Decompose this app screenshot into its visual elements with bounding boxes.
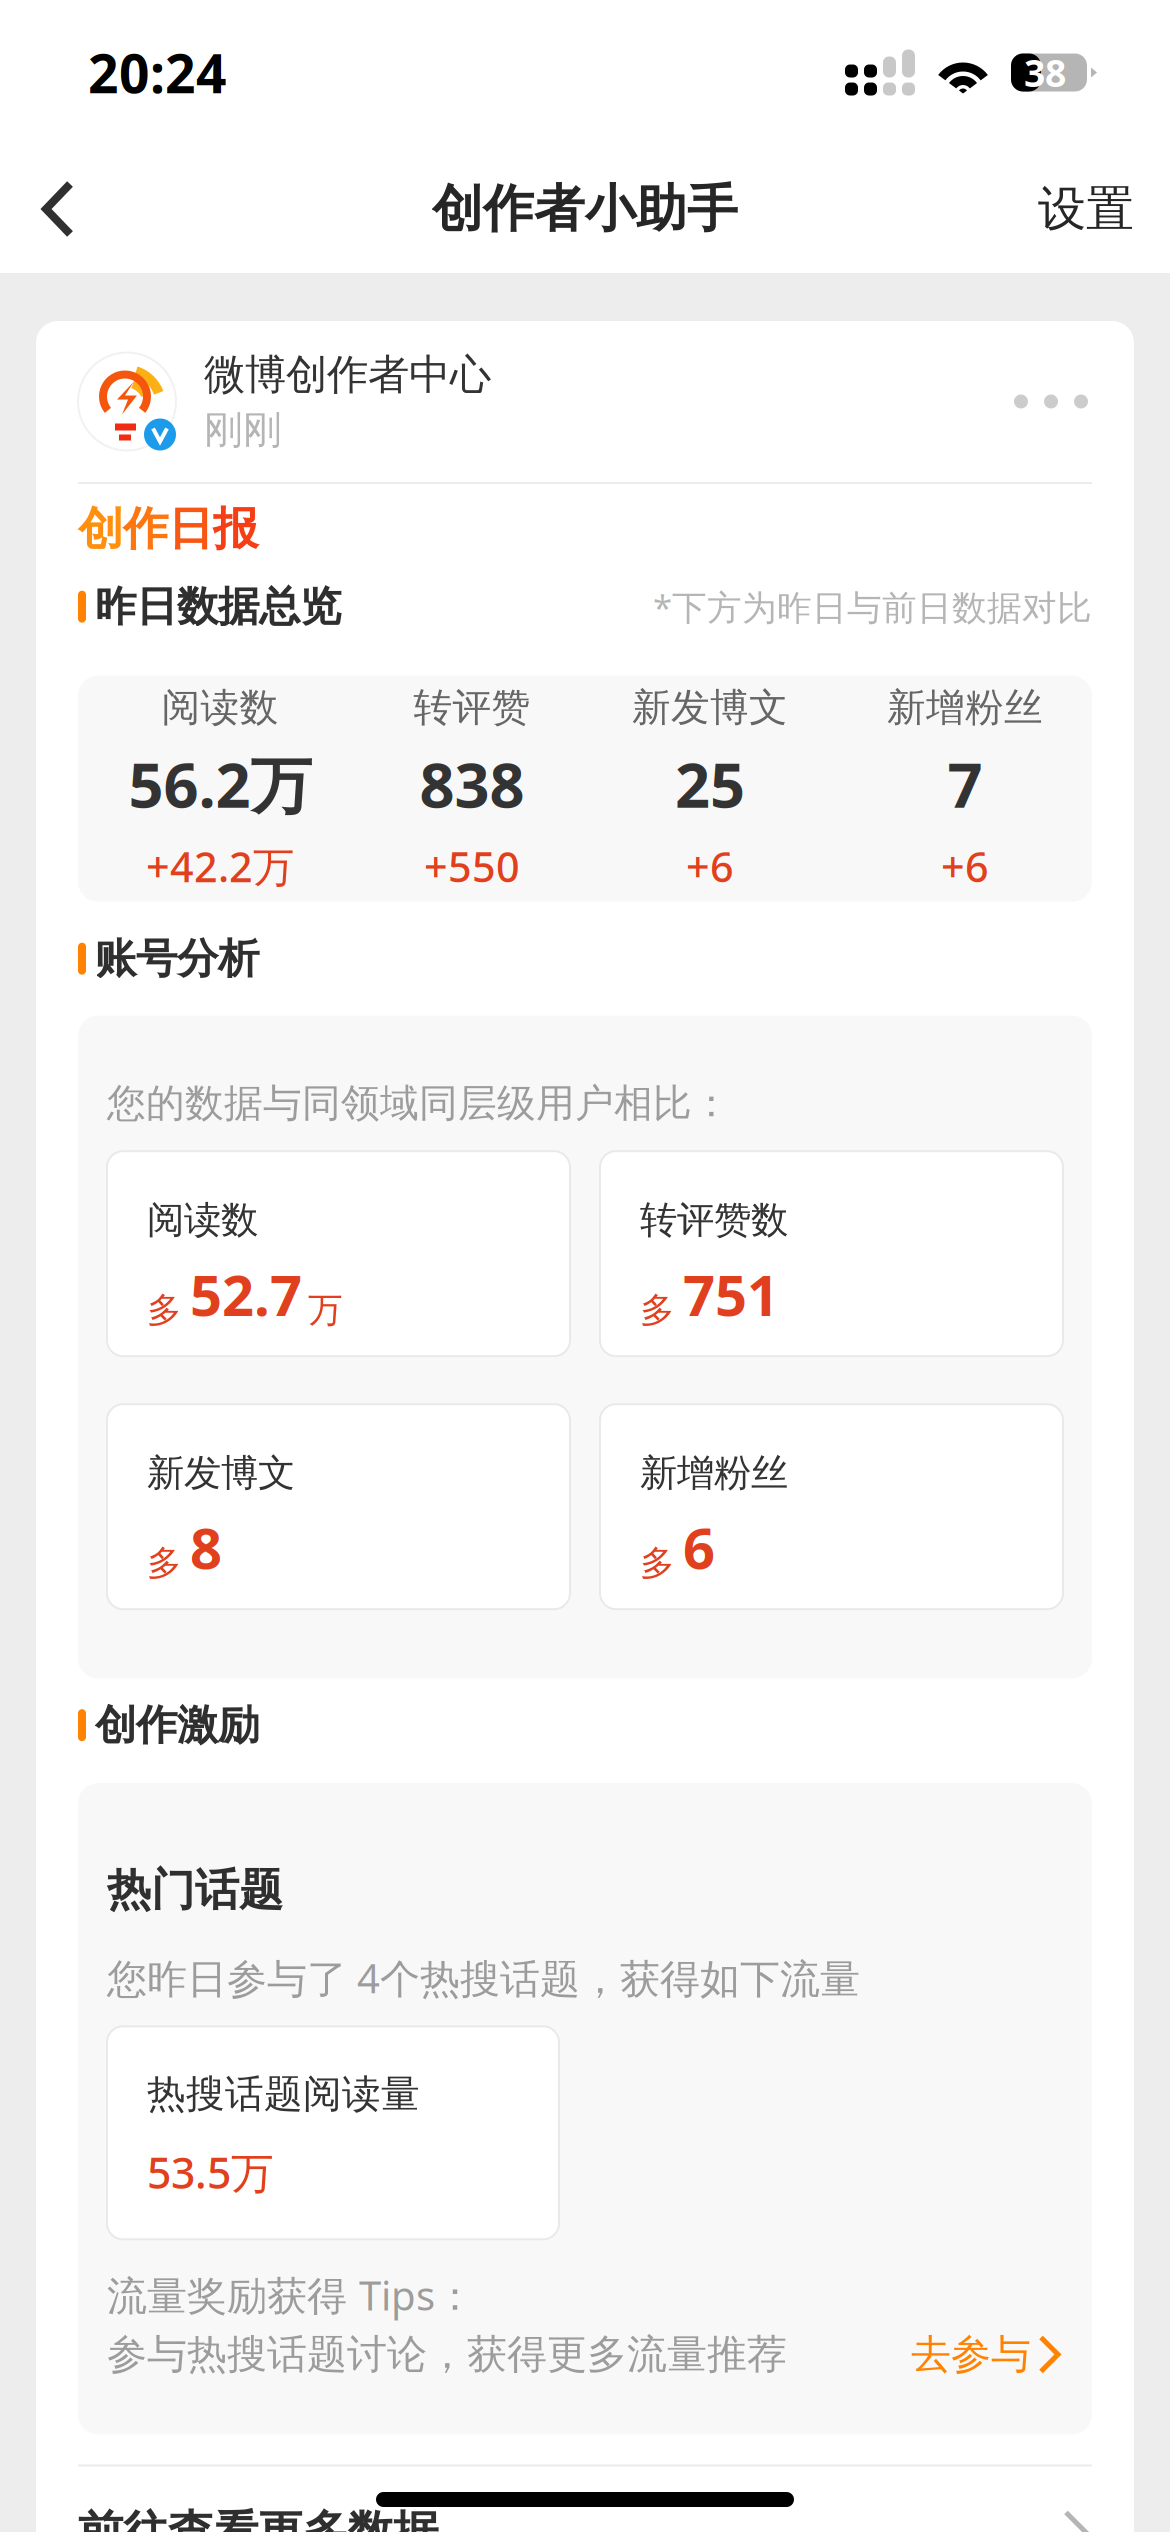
staticText: 25 <box>675 743 745 825</box>
staticText: 38 <box>1024 48 1066 97</box>
staticText: 设置 <box>1038 179 1134 238</box>
button[interactable]: 前往查看更多数据 <box>78 2466 1092 2532</box>
staticText: *下方为昨日与前日数据对比 <box>653 584 1092 630</box>
staticText: 作 <box>123 501 168 557</box>
staticText: 多 <box>147 1289 182 1331</box>
staticText: 52.7 <box>190 1257 302 1331</box>
staticText: 多 <box>147 1542 182 1584</box>
staticText: +6 <box>941 839 989 894</box>
staticText: 刚刚 <box>204 406 282 454</box>
staticText: 7 <box>947 743 982 825</box>
button[interactable]: 设置 <box>1008 145 1170 273</box>
staticText: 账号分析 <box>95 933 259 984</box>
staticText: 多 <box>640 1289 675 1331</box>
staticText: 53.5万 <box>147 2144 274 2200</box>
staticText: 56.2万 <box>128 743 311 825</box>
staticText: 您昨日参与了 4个热搜话题，获得如下流量 <box>107 1951 860 2004</box>
staticText: 报 <box>213 501 258 557</box>
staticText: 新增粉丝 <box>640 1450 788 1496</box>
staticText: +42.2万 <box>146 839 294 894</box>
staticText: +6 <box>686 839 734 894</box>
staticText: 创作激励 <box>95 1700 259 1751</box>
staticText: 多 <box>640 1542 675 1584</box>
staticText: 去参与 <box>911 2330 1031 2379</box>
staticText: 8 <box>190 1510 222 1584</box>
staticText: 日 <box>168 501 213 557</box>
staticText: +550 <box>424 839 520 894</box>
button[interactable]: More options <box>1000 366 1102 436</box>
staticText: 新发博文 <box>632 684 788 731</box>
staticText: 751 <box>683 1257 779 1331</box>
staticText: 热搜话题阅读量 <box>147 2070 420 2118</box>
staticText: 昨日数据总览 <box>95 581 341 632</box>
button[interactable]: Back <box>0 145 110 273</box>
staticText: 新发博文 <box>147 1450 295 1496</box>
staticText: 838 <box>419 743 524 825</box>
staticText: 创作者小助手 <box>432 178 738 240</box>
button[interactable]: 去参与 <box>911 2329 1063 2379</box>
staticText: 您的数据与同领域同层级用户相比： <box>107 1080 731 1127</box>
staticText: 新增粉丝 <box>887 684 1043 731</box>
staticText: 阅读数 <box>161 684 278 731</box>
staticText: 6 <box>683 1510 715 1584</box>
staticText: 万 <box>308 1289 343 1331</box>
staticText: 微博创作者中心 <box>204 349 491 400</box>
staticText: 热门话题 <box>107 1863 283 1917</box>
staticText: 转评赞 <box>413 684 530 731</box>
staticText: 创 <box>78 501 123 557</box>
staticText: 20:24 <box>88 37 227 108</box>
staticText: 参与热搜话题讨论，获得更多流量推荐 <box>107 2330 787 2379</box>
staticText: 流量奖励获得 Tips： <box>107 2268 475 2321</box>
staticText: 转评赞数 <box>640 1197 788 1243</box>
staticText: 阅读数 <box>147 1197 258 1243</box>
staticText: 前往查看更多数据 <box>78 2505 438 2532</box>
